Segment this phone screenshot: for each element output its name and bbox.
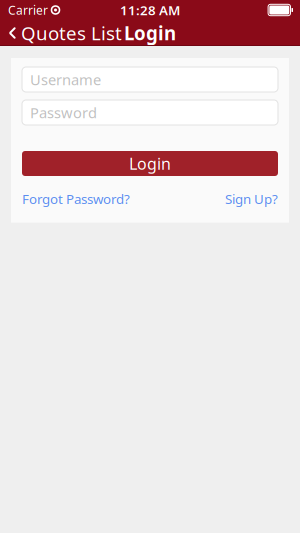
staticText: Login (129, 153, 171, 174)
staticText: Carrier (8, 2, 48, 18)
button[interactable]: Forgot Password? (22, 187, 130, 211)
button[interactable]: Sign Up? (225, 187, 278, 211)
button[interactable]: Quotes List (0, 20, 132, 46)
staticText: Sign Up? (225, 190, 278, 208)
staticText: 11:28 AM (120, 1, 180, 19)
button[interactable]: Login (22, 151, 278, 176)
staticText: Forgot Password? (22, 190, 130, 208)
staticText: Login (124, 21, 176, 45)
staticText (48, 2, 51, 18)
staticText: Password (30, 103, 97, 122)
staticText: Quotes List (21, 21, 122, 45)
staticText: Username (30, 70, 101, 89)
